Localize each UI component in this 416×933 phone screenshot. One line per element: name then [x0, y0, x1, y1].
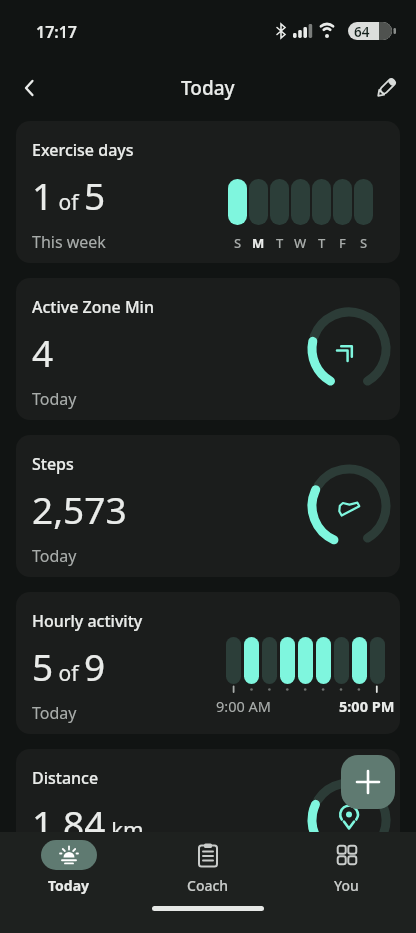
staticText: 9:00 AM: [216, 696, 271, 716]
button[interactable]: Distance: [16, 749, 400, 891]
staticText: 5 of 9: [32, 641, 106, 691]
staticText: T: [318, 234, 326, 252]
staticText: Hourly activity: [32, 610, 143, 632]
button[interactable]: Active Zone Min: [16, 278, 400, 420]
staticText: Active Zone Min: [32, 296, 154, 318]
staticText: Today: [32, 859, 77, 881]
staticText: 1 of 5: [32, 170, 106, 220]
staticText: Today: [48, 876, 90, 895]
button[interactable]: Steps: [16, 435, 400, 577]
staticText: 5:00 PM: [339, 696, 395, 716]
button[interactable]: Today: [0, 840, 138, 895]
staticText: Distance: [32, 767, 99, 789]
staticText: S: [360, 234, 368, 252]
staticText: T: [276, 234, 284, 252]
staticText: F: [339, 234, 346, 252]
staticText: Exercise days: [32, 139, 134, 161]
staticText: M: [252, 234, 265, 252]
staticText: 2,573: [32, 484, 127, 534]
staticText: Coach: [187, 876, 229, 895]
staticText: Today: [32, 388, 77, 410]
staticText: Today: [181, 75, 235, 101]
staticText: Today: [32, 545, 77, 567]
staticText: S: [234, 234, 242, 252]
button[interactable]: [368, 70, 404, 106]
staticText: You: [334, 876, 359, 895]
button[interactable]: Exercise days: [16, 121, 400, 263]
button[interactable]: Hourly activity: [16, 592, 400, 734]
staticText: 17:17: [36, 21, 78, 43]
button[interactable]: [341, 755, 395, 809]
staticText: Today: [32, 702, 77, 724]
staticText: Steps: [32, 453, 74, 475]
button[interactable]: [12, 70, 48, 106]
button[interactable]: You: [277, 840, 416, 895]
staticText: 4: [32, 327, 54, 377]
staticText: This week: [32, 231, 106, 253]
staticText: 64: [354, 23, 370, 41]
staticText: W: [294, 234, 307, 252]
staticText: 1.84 km: [32, 798, 144, 848]
button[interactable]: Coach: [138, 840, 277, 895]
